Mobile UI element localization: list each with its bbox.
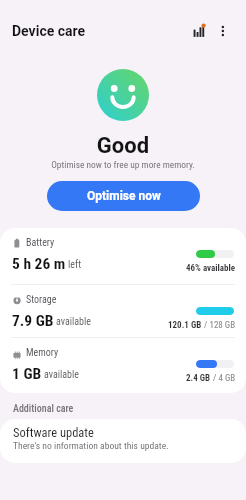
staticText: There's no information about this update… xyxy=(13,440,169,451)
staticText: 46% available xyxy=(186,263,236,274)
staticText: / 128 GB xyxy=(202,320,236,331)
staticText: 5 h 26 m xyxy=(12,255,66,273)
button[interactable]: Storage xyxy=(0,285,246,340)
staticText: Device care xyxy=(12,23,86,39)
staticText: Good xyxy=(0,133,246,159)
staticText: 7.9 GB xyxy=(12,312,54,330)
button[interactable]: Usage statistics xyxy=(185,17,211,43)
staticText: Memory xyxy=(26,347,59,359)
staticText: Additional care xyxy=(13,403,74,415)
staticText: left xyxy=(68,259,82,271)
staticText: Battery xyxy=(26,237,55,249)
button[interactable]: Battery xyxy=(0,228,246,283)
staticText: Software update xyxy=(13,425,94,440)
staticText: Optimise now to free up more memory. xyxy=(0,159,246,170)
staticText: available xyxy=(44,369,80,381)
staticText: 120.1 GB xyxy=(168,320,202,331)
staticText: Storage xyxy=(26,294,57,306)
staticText: / 4 GB xyxy=(211,373,236,384)
button[interactable]: Memory xyxy=(0,338,246,393)
staticText: Optimise now xyxy=(87,189,161,203)
staticText: available xyxy=(56,316,92,328)
button[interactable]: Optimise now xyxy=(47,181,200,211)
button[interactable]: Software update xyxy=(0,419,246,463)
button[interactable]: More options xyxy=(211,17,235,41)
staticText: 1 GB xyxy=(12,365,42,383)
staticText: 2.4 GB xyxy=(186,373,211,384)
